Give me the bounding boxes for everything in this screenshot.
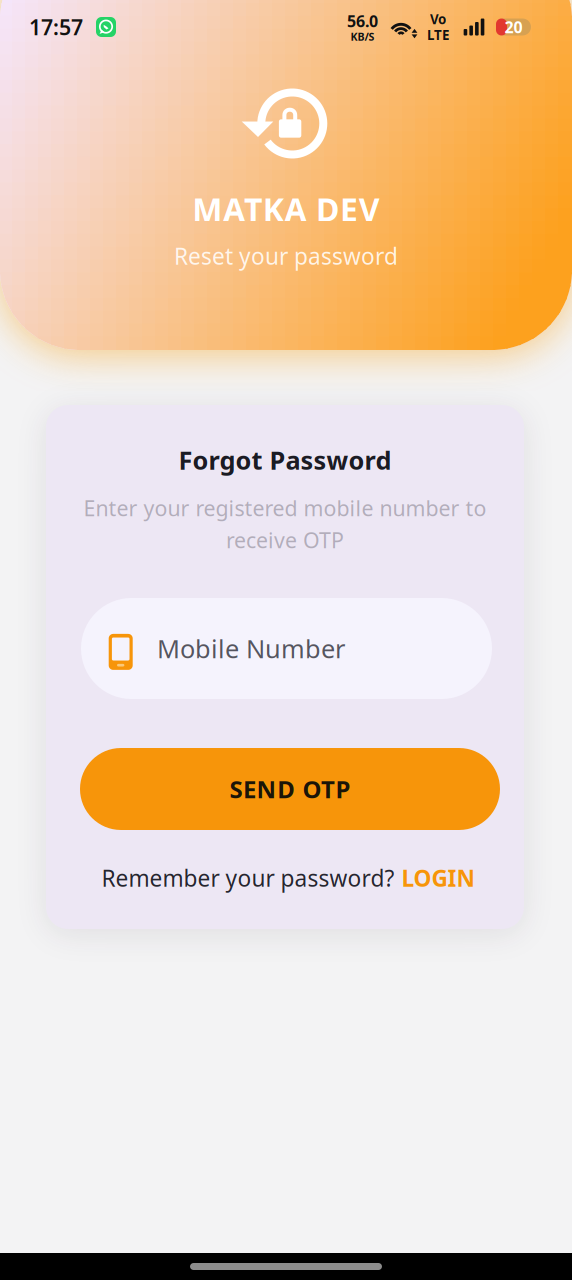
staticText: Mobile Number [157,632,345,665]
staticText: SEND OTP [229,773,351,805]
staticText: receive OTP [226,526,344,554]
staticText: Forgot Password [178,443,391,477]
staticText: Reset your password [174,241,398,271]
staticText: 56.0 [347,10,378,31]
staticText: LOGIN [401,863,474,893]
staticText: 17:57 [29,13,83,41]
staticText: LTE [427,26,449,44]
staticText: MATKA DEV [192,188,380,230]
staticText: 20 [504,16,522,38]
staticText: KB/S [350,29,374,44]
button[interactable]: SEND OTP [80,748,500,830]
staticText: Enter your registered mobile number to [83,494,486,522]
button[interactable]: LOGIN [401,863,474,893]
staticText: Vo [430,10,446,28]
staticText: Remember your password? [101,863,394,893]
